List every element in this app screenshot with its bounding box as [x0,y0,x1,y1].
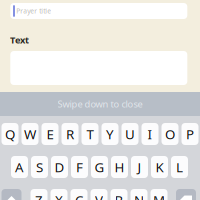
button[interactable]: Y [101,123,118,145]
staticText: N [134,191,144,200]
button[interactable]: Q [1,123,18,145]
staticText: A [15,158,24,176]
button[interactable]: N [130,189,147,200]
button[interactable]: A [11,156,28,178]
staticText: C [75,191,83,200]
button[interactable]: Swipe down to close [0,92,200,116]
staticText: W [24,125,36,143]
staticText: Prayer title [16,7,51,15]
button[interactable]: K [151,156,168,178]
button[interactable]: P [181,123,198,145]
button[interactable]: Prayer title [10,3,187,19]
button[interactable]: X [50,189,67,200]
staticText: T [86,125,93,143]
button[interactable]: M [150,189,167,200]
staticText: S [36,158,43,176]
staticText: Text [10,34,29,46]
staticText: R [66,125,74,143]
staticText: D [54,158,64,176]
staticText: H [114,158,124,176]
staticText: O [165,125,175,143]
button[interactable]: I [141,123,158,145]
staticText: B [114,191,123,200]
button[interactable]: C [70,189,87,200]
button[interactable]: B [110,189,127,200]
button[interactable]: Z [30,189,47,200]
staticText: L [176,158,183,176]
staticText: Swipe down to close [57,98,142,110]
staticText: V [95,191,103,200]
button[interactable]: R [61,123,78,145]
button[interactable]: D [51,156,68,178]
button[interactable]: U [121,123,138,145]
staticText: I [147,125,152,143]
staticText: J [137,158,141,176]
staticText: G [94,158,104,176]
button[interactable]: F [71,156,88,178]
button[interactable]: W [21,123,38,145]
button[interactable]: L [171,156,188,178]
staticText: U [125,125,135,143]
staticText: P [186,125,194,143]
staticText: Z [35,191,43,200]
button[interactable]: O [161,123,178,145]
staticText: X [55,191,63,200]
button[interactable]: Delete [176,189,196,200]
button[interactable]: H [111,156,128,178]
button[interactable]: G [91,156,108,178]
button[interactable]: V [90,189,107,200]
staticText: E [46,125,53,143]
staticText: F [76,158,83,176]
staticText: M [153,191,165,200]
staticText: K [155,158,163,176]
button[interactable]: J [131,156,148,178]
button[interactable]: Shift [1,189,21,200]
staticText: Y [106,125,114,143]
staticText: Q [5,125,15,143]
button[interactable]: E [41,123,58,145]
button[interactable]: S [31,156,48,178]
button[interactable]: T [81,123,98,145]
